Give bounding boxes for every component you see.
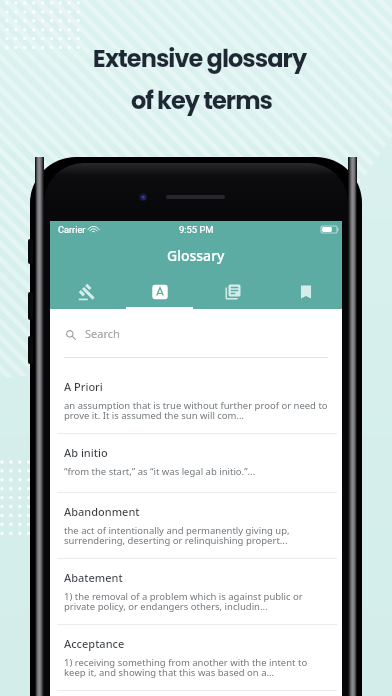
button[interactable]: Ab initio <box>50 434 342 493</box>
button[interactable]: Abatement <box>50 559 342 625</box>
staticText: 9:55 PM <box>179 224 214 235</box>
staticText: Glossary <box>167 246 225 265</box>
staticText: A Priori <box>64 379 103 394</box>
staticText: an assumption that is true without furth… <box>64 399 328 422</box>
staticText: Carrier <box>58 224 86 235</box>
staticText: 1) receiving something from another with… <box>64 656 328 679</box>
staticText: 1) the removal of a problem which is aga… <box>64 590 328 613</box>
staticText: Abandonment <box>64 504 140 519</box>
button[interactable]: Abandonment <box>50 493 342 559</box>
button[interactable]: Glossary <box>123 273 196 309</box>
staticText: the act of intentionally and permanently… <box>64 524 328 547</box>
staticText: of key terms <box>11 84 392 118</box>
button[interactable]: A Priori <box>50 358 342 434</box>
button[interactable]: Bookmarks <box>269 273 342 309</box>
staticText: “from the start,” as “it was legal ab in… <box>64 465 256 478</box>
button[interactable]: Acceptance <box>50 625 342 691</box>
staticText: Ab initio <box>64 445 108 460</box>
staticText: Search <box>85 326 120 341</box>
button[interactable]: Articles <box>196 273 269 309</box>
button[interactable]: Laws <box>50 273 123 309</box>
button[interactable]: Search <box>50 309 342 358</box>
staticText: Abatement <box>64 570 123 585</box>
staticText: Acceptance <box>64 636 125 651</box>
staticText: Extensive glossary <box>7 42 392 76</box>
